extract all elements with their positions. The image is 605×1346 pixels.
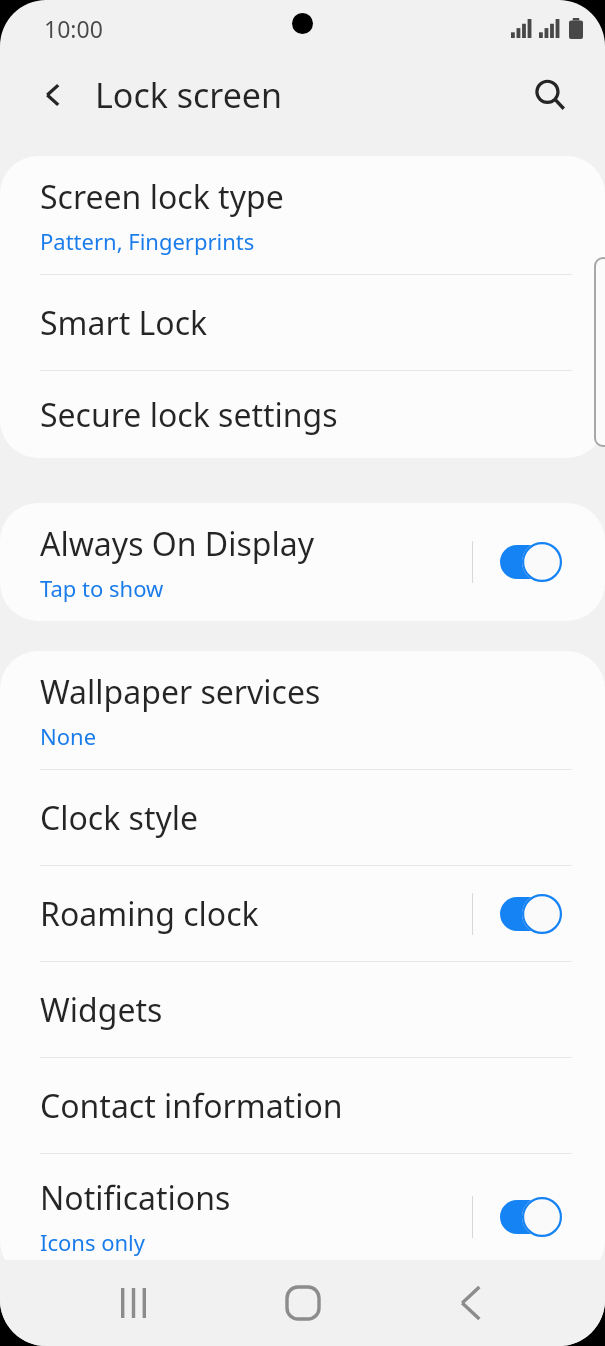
button[interactable]: Clock style: [0, 770, 605, 865]
button[interactable]: On: [500, 542, 562, 582]
button[interactable]: Smart Lock: [0, 275, 605, 370]
button[interactable]: Notifications: [0, 1154, 605, 1279]
staticText: 10:00: [44, 13, 103, 44]
staticText: Always On Display: [40, 522, 315, 566]
button[interactable]: Wallpaper services: [0, 651, 605, 769]
staticText: Notifications: [40, 1176, 231, 1220]
staticText: Pattern, Fingerprints: [40, 226, 255, 256]
button[interactable]: Screen lock type: [0, 156, 605, 274]
button[interactable]: On: [500, 894, 562, 934]
button[interactable]: Recent apps: [94, 1263, 174, 1343]
staticText: Secure lock settings: [40, 393, 338, 437]
button[interactable]: Search: [523, 68, 577, 122]
staticText: None: [40, 721, 97, 751]
button[interactable]: Contact information: [0, 1058, 605, 1153]
staticText: Icons only: [40, 1227, 145, 1257]
staticText: Tap to show: [40, 573, 164, 603]
staticText: Lock screen: [95, 72, 283, 118]
button[interactable]: Roaming clock: [0, 866, 605, 961]
staticText: Smart Lock: [40, 301, 208, 345]
button[interactable]: Home: [263, 1263, 343, 1343]
staticText: Clock style: [40, 796, 199, 840]
button[interactable]: Back: [431, 1263, 511, 1343]
staticText: Wallpaper services: [40, 670, 321, 714]
staticText: Screen lock type: [40, 175, 284, 219]
staticText: Widgets: [40, 988, 163, 1032]
button[interactable]: Navigate up: [28, 70, 78, 120]
button[interactable]: Widgets: [0, 962, 605, 1057]
button[interactable]: Always On Display: [0, 503, 605, 621]
button[interactable]: On: [500, 1197, 562, 1237]
staticText: Roaming clock: [40, 892, 259, 936]
staticText: Contact information: [40, 1084, 343, 1128]
button[interactable]: Secure lock settings: [0, 371, 605, 458]
